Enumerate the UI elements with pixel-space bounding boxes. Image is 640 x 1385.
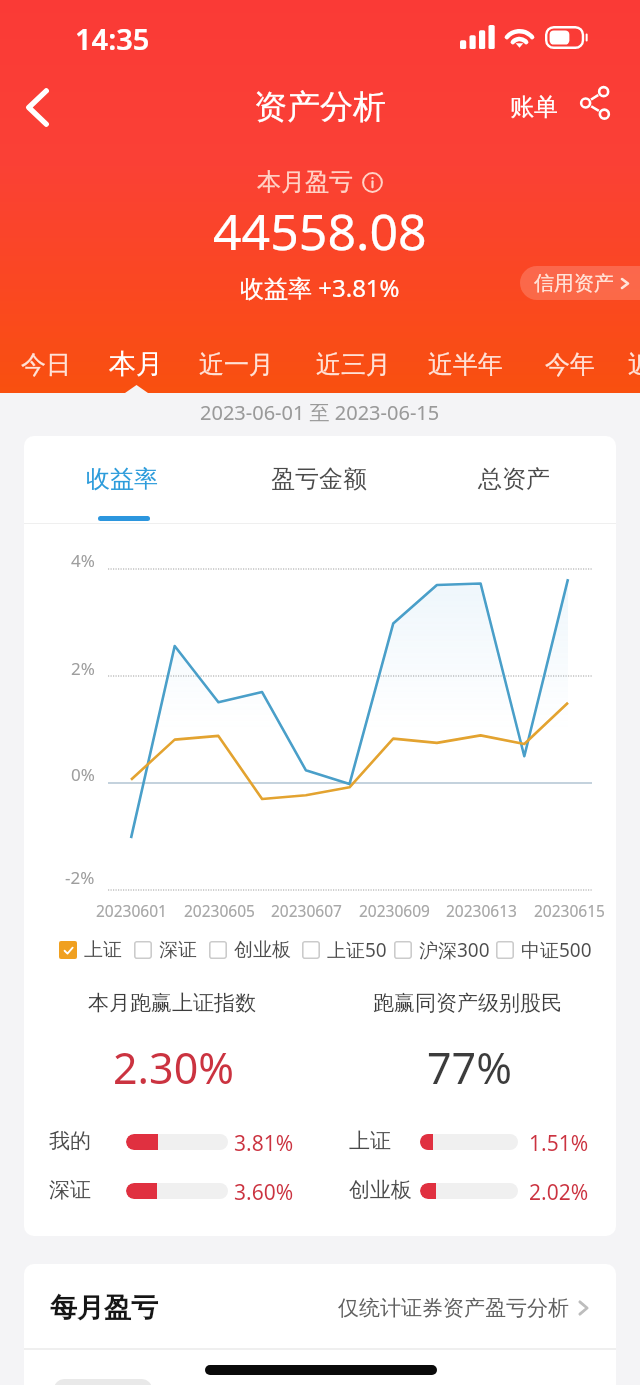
staticText: 收益率 +3.81% (240, 271, 400, 304)
staticText: 2% (71, 657, 95, 677)
staticText: 我的 (49, 1128, 91, 1154)
staticText: 20230607 (271, 900, 342, 921)
button[interactable]: 创业板 (205, 934, 295, 966)
staticText: 20230605 (184, 900, 255, 921)
button[interactable]: 盈亏金额 (259, 436, 379, 522)
staticText: 2.30% (113, 1038, 235, 1097)
staticText: 近三月 (316, 349, 391, 380)
staticText: 77% (427, 1038, 512, 1097)
staticText: 20230609 (359, 900, 430, 921)
button[interactable]: 今年 (537, 339, 603, 389)
staticText: 本月盈亏 (257, 167, 353, 197)
button[interactable]: 沪深300 (390, 934, 494, 966)
staticText: 中证500 (521, 937, 592, 963)
staticText: 2023-06-01 至 2023-06-15 (200, 399, 440, 426)
staticText: 仅统计证券资产盈亏分析 (338, 1295, 569, 1321)
staticText: 2.02% (529, 1178, 589, 1207)
staticText: 4% (71, 549, 95, 569)
staticText: 3.60% (234, 1178, 294, 1207)
staticText: 本月 (109, 347, 163, 381)
staticText: 20230601 (96, 900, 167, 921)
button[interactable]: 近半年 (420, 339, 511, 389)
staticText: 收益率 (86, 464, 158, 494)
staticText: 上证 (84, 938, 122, 962)
staticText: 14:35 (75, 19, 150, 58)
button[interactable]: Share (572, 80, 618, 126)
staticText: 深证 (159, 938, 197, 962)
button[interactable]: Back (8, 78, 66, 136)
staticText: 上证50 (327, 937, 387, 963)
button[interactable]: 本月 (101, 339, 171, 389)
button[interactable]: 近两年 (620, 339, 640, 389)
button[interactable]: 每月盈亏 (24, 1264, 616, 1352)
staticText: 每月盈亏 (50, 1291, 158, 1325)
button[interactable]: 近三月 (308, 339, 399, 389)
staticText: 深证 (49, 1177, 91, 1203)
button[interactable]: 总资产 (454, 436, 574, 522)
staticText: 20230613 (446, 900, 517, 921)
button[interactable]: 账单 (498, 82, 570, 132)
staticText: 1.51% (529, 1129, 589, 1158)
staticText: 沪深300 (419, 937, 490, 963)
staticText: 创业板 (234, 938, 291, 962)
staticText: -2% (65, 866, 95, 886)
button[interactable]: 收益率 (62, 436, 182, 522)
staticText: 总资产 (478, 464, 550, 494)
button[interactable]: 上证50 (298, 934, 391, 966)
staticText: 3.81% (234, 1129, 294, 1158)
button[interactable]: 深证 (130, 934, 201, 966)
button[interactable]: 信用资产 (520, 266, 640, 300)
staticText: 跑赢同资产级别股民 (373, 990, 562, 1016)
button[interactable]: 今日 (13, 339, 79, 389)
staticText: 信用资产 (534, 271, 614, 296)
staticText: 上证 (349, 1128, 391, 1154)
button[interactable]: 近一月 (191, 339, 282, 389)
staticText: 创业板 (349, 1177, 412, 1203)
staticText: 近一月 (199, 349, 274, 380)
staticText: 近半年 (428, 349, 503, 380)
staticText: 本月跑赢上证指数 (88, 990, 256, 1016)
button[interactable]: 中证500 (492, 934, 596, 966)
button[interactable]: 上证 (55, 934, 126, 966)
staticText: 0% (71, 763, 95, 783)
staticText: 资产分析 (254, 86, 386, 128)
staticText: 今年 (545, 349, 595, 380)
staticText: 今日 (21, 349, 71, 380)
staticText: 44558.08 (213, 197, 427, 265)
staticText: 盈亏金额 (271, 464, 367, 494)
staticText: 近两年 (628, 349, 640, 380)
staticText: 20230615 (534, 900, 605, 921)
staticText: 账单 (510, 92, 558, 122)
